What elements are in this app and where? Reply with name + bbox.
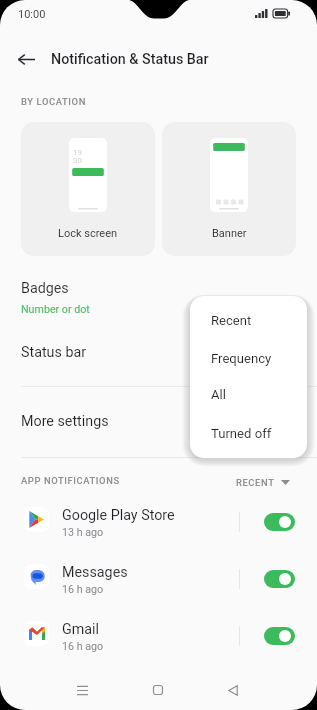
staticText: Number or dot [21,303,90,316]
staticText: Lock screen [58,227,118,240]
staticText: Notification & Status Bar [51,51,209,68]
button[interactable]: Google Play Store [0,494,317,551]
staticText: RECENT [236,477,275,488]
button[interactable]: RECENT [232,473,294,492]
staticText: 16 h ago [62,583,104,596]
button[interactable]: All [190,375,307,413]
staticText: Google Play Store [62,507,175,524]
staticText: Turned off [211,426,272,441]
button[interactable]: Toggle notifications [264,513,295,531]
staticText: 13 h ago [62,526,104,539]
button[interactable]: Messages [0,551,317,608]
staticText: 10:00 [18,8,46,21]
button[interactable]: Home [141,673,175,707]
button[interactable]: Back [12,45,40,73]
staticText: Banner [212,227,247,240]
staticText: All [211,387,226,402]
staticText: BY LOCATION [21,96,86,107]
button[interactable]: 19 30 [21,122,155,256]
button[interactable]: Toggle notifications [264,627,295,645]
button[interactable]: Gmail [0,608,317,665]
staticText: More settings [21,413,109,430]
button[interactable]: More settings [0,400,317,448]
staticText: Frequency [211,351,272,366]
staticText: Status bar [21,344,87,361]
button[interactable]: Badges [0,268,317,323]
button[interactable]: Status bar [0,328,317,376]
button[interactable]: Recent [190,301,307,339]
button[interactable]: Back [216,673,250,707]
staticText: 16 h ago [62,640,104,653]
staticText: Recent [211,313,252,328]
staticText: Gmail [62,621,100,638]
staticText: 19 30 [73,148,82,165]
staticText: Messages [62,564,128,581]
button[interactable]: Turned off [190,414,307,452]
button[interactable]: Banner [162,122,296,256]
staticText: Badges [21,280,69,297]
button[interactable]: Recents [65,673,99,707]
button[interactable]: Frequency [190,339,307,377]
button[interactable]: Toggle notifications [264,570,295,588]
staticText: APP NOTIFICATIONS [21,475,120,486]
